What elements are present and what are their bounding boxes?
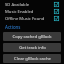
button[interactable]: Music Enabled bbox=[3, 8, 61, 15]
staticText: Music Enabled bbox=[5, 9, 34, 15]
button[interactable]: SD Available bbox=[3, 1, 61, 8]
button[interactable]: Actions bbox=[3, 24, 21, 30]
staticText: SD Available bbox=[5, 2, 30, 8]
staticText: Actions bbox=[5, 24, 21, 30]
staticText: Offline Music Found bbox=[5, 16, 45, 22]
button[interactable]: Copy cached gBlock bbox=[3, 32, 61, 41]
button[interactable]: Get track info bbox=[3, 43, 61, 52]
staticText: Clear gBlock cache bbox=[14, 56, 51, 62]
staticText: Copy cached gBlock bbox=[12, 34, 52, 40]
button[interactable]: Clear gBlock cache bbox=[3, 54, 61, 63]
button[interactable]: Offline Music Found bbox=[3, 15, 61, 22]
staticText: Get track info bbox=[19, 45, 46, 51]
